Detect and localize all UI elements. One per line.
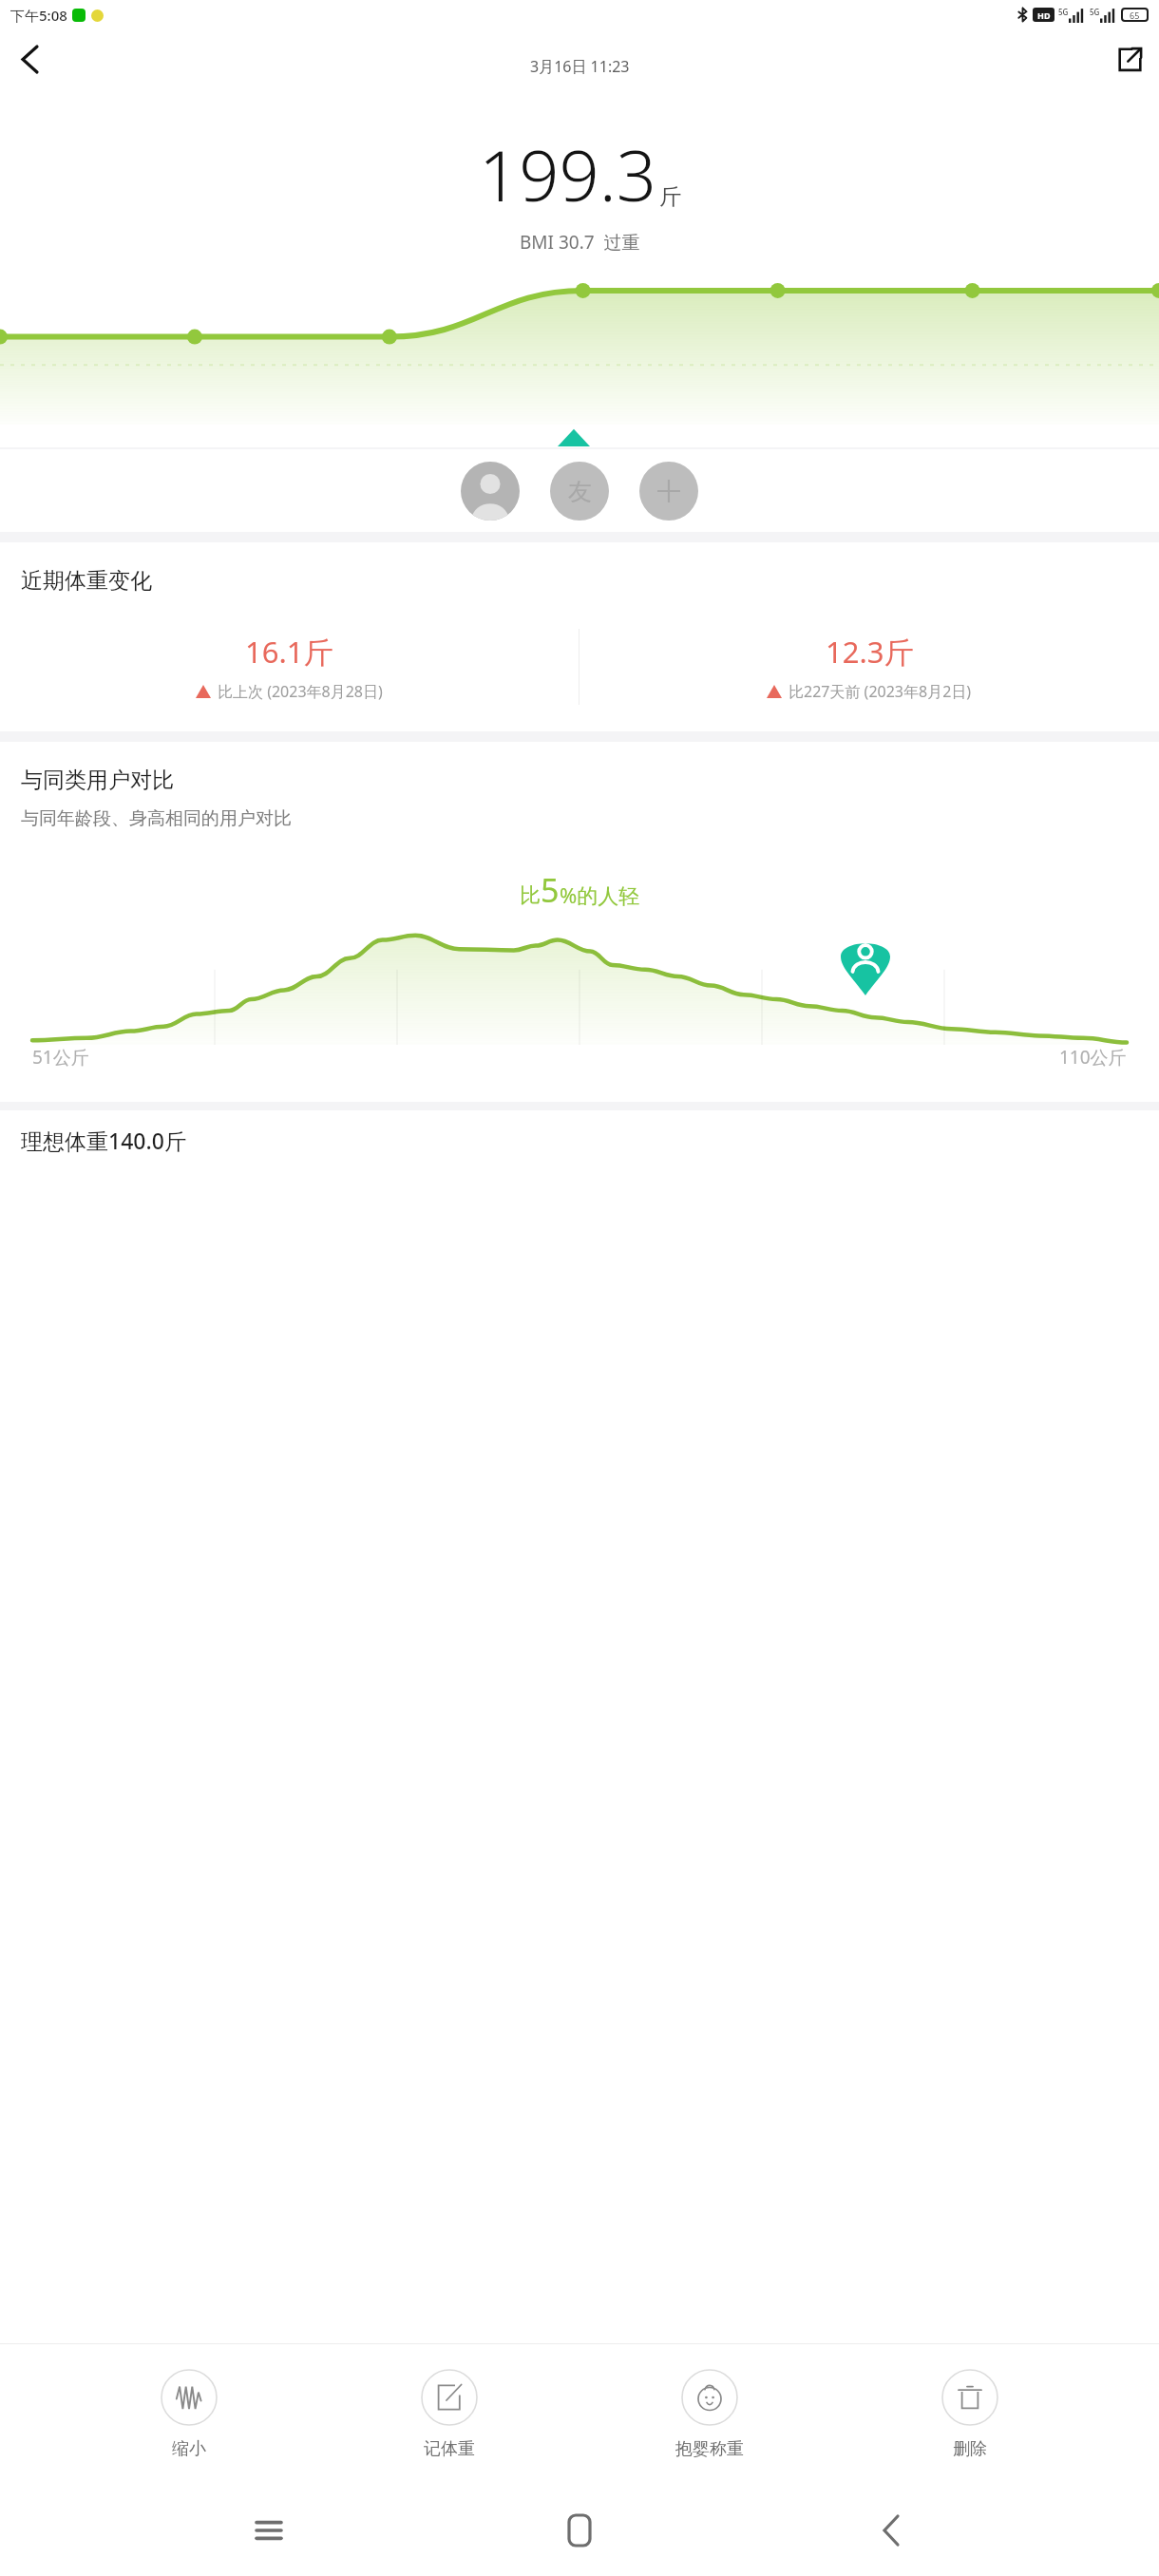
staticText: HD [1037,9,1051,21]
staticText: BMI 30.7 过重 [520,230,640,255]
staticText: 比 [520,882,541,909]
button[interactable]: My profile [461,462,520,521]
other: Your position [841,933,890,995]
staticText: 5G [1090,7,1100,17]
button[interactable]: 缩小 [118,2369,260,2460]
staticText: 110公斤 [1059,1045,1127,1070]
staticText: 下午5:08 [10,6,67,25]
staticText: 65 [1130,9,1140,21]
button[interactable]: 友 [550,462,609,521]
staticText: 199.3 [479,126,657,222]
staticText: 与同类用户对比 [21,767,174,794]
staticText: 友 [568,477,592,506]
staticText: 比227天前 (2023年8月2日) [788,681,972,702]
button[interactable]: Share [1100,29,1159,88]
button[interactable]: 12.3斤 [579,623,1159,710]
button[interactable]: 删除 [899,2369,1041,2460]
staticText: 抱婴称重 [675,2438,744,2460]
button[interactable]: Home [537,2488,622,2573]
staticText: 3月16日 11:23 [530,56,630,77]
staticText: 理想体重140.0斤 [21,1126,186,1155]
staticText: 16.1斤 [245,632,333,672]
button[interactable]: 抱婴称重 [638,2369,781,2460]
staticText: 51公斤 [32,1045,89,1070]
staticText: 缩小 [172,2438,206,2460]
button[interactable]: Back [848,2488,934,2573]
button[interactable]: 记体重 [378,2369,521,2460]
staticText: 近期体重变化 [21,567,152,595]
staticText: 12.3斤 [826,632,914,672]
staticText: 5G [1058,7,1069,17]
staticText: 与同年龄段、身高相同的用户对比 [21,807,292,830]
button[interactable]: 理想体重140.0斤 [0,1110,1159,1177]
staticText: 记体重 [424,2438,475,2460]
button[interactable]: Back [0,29,59,88]
staticText: 删除 [953,2438,987,2460]
staticText: 比上次 (2023年8月28日) [218,681,383,702]
button[interactable]: Recents [226,2488,312,2573]
button[interactable]: 16.1斤 [0,623,579,710]
staticText: 5 [541,868,560,912]
button[interactable]: Add member [639,462,698,521]
staticText: 斤 [659,183,681,211]
staticText: %的人轻 [560,881,640,909]
